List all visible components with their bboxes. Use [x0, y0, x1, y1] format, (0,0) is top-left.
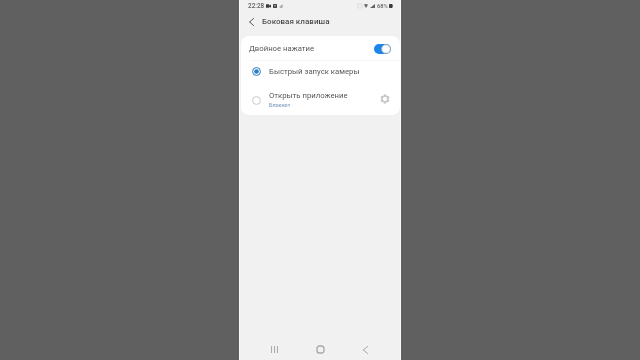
staticText: Открыть приложение [269, 91, 348, 100]
staticText: Боковая клавиша [262, 17, 330, 26]
button[interactable]: Выбрано: быстрый запуск камеры [251, 66, 262, 77]
staticText: 68% [377, 3, 388, 10]
button[interactable]: Открыть приложение [251, 95, 262, 106]
button[interactable]: Recent apps [266, 341, 282, 357]
button[interactable]: Settings [378, 92, 391, 105]
button[interactable]: Двойное нажатие [241, 36, 400, 60]
button[interactable]: Двойное нажатие, включено [374, 44, 391, 54]
button[interactable]: Открыть приложение [241, 84, 400, 115]
button[interactable]: Home [312, 341, 328, 357]
staticText: 22:28 [248, 2, 265, 10]
staticText: Блокнот [269, 102, 291, 108]
staticText: Быстрый запуск камеры [269, 67, 360, 76]
button[interactable]: Back [357, 342, 373, 358]
button[interactable]: Выбрано: быстрый запуск камеры [241, 59, 400, 83]
button[interactable]: Back [245, 16, 257, 28]
staticText: Двойное нажатие [249, 44, 315, 53]
